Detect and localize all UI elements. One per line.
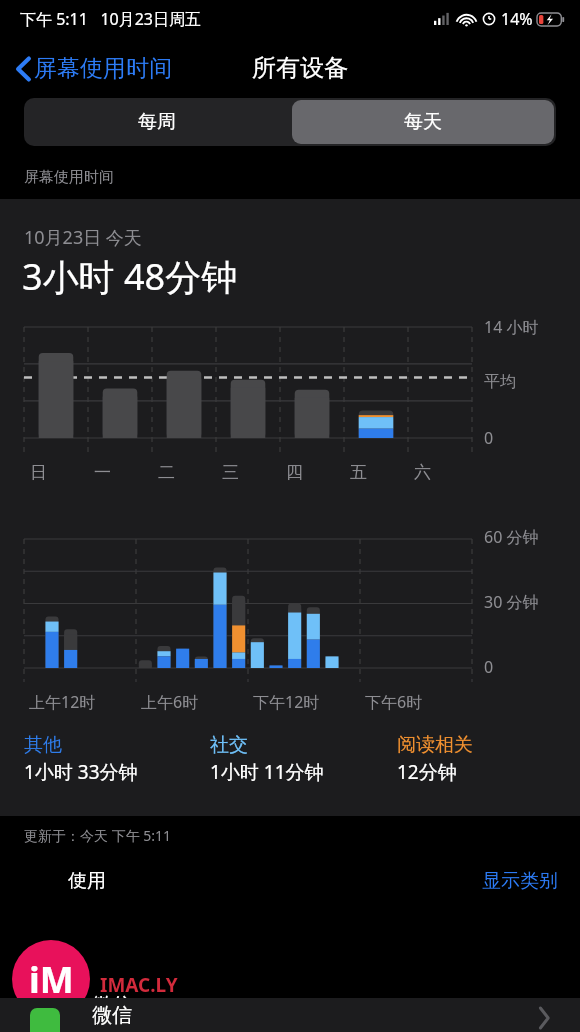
staticText: 1小时 11分钟 (210, 759, 324, 785)
staticText: iM (29, 955, 74, 1004)
staticText: 三 (222, 462, 239, 483)
staticText: 显示类别 (482, 869, 558, 893)
button[interactable]: 显示类别 (482, 869, 580, 893)
staticText: 60 分钟 (484, 526, 539, 548)
staticText: 所有设备 (252, 53, 348, 83)
staticText: 0 (484, 656, 494, 678)
staticText: 二 (158, 462, 175, 483)
button[interactable]: 每天 (292, 100, 554, 144)
staticText: 使用 (68, 869, 106, 893)
staticText: 其他 (24, 733, 62, 757)
staticText: 每周 (138, 110, 176, 134)
button[interactable]: 社交 (210, 733, 397, 785)
staticText: 一 (94, 462, 111, 483)
staticText: 下午 5:11 10月23日周五 (20, 8, 201, 30)
staticText: 1小时 33分钟 (24, 759, 138, 785)
staticText: 每天 (404, 110, 442, 134)
button[interactable]: 阅读相关 (397, 733, 556, 785)
staticText: 14 小时 (484, 316, 539, 338)
staticText: 屏幕使用时间 (24, 168, 114, 187)
other: 返回 (16, 56, 31, 82)
staticText: GENIUS (140, 996, 178, 1010)
staticText: 下午12时 (253, 691, 320, 713)
staticText: 上午12时 (29, 691, 96, 713)
button[interactable]: 10月23日 今天 (0, 199, 580, 816)
staticText: 0 (484, 427, 494, 449)
staticText: 社交 (210, 733, 248, 757)
staticText: 3小时 48分钟 (22, 252, 238, 301)
staticText: 日 (30, 462, 47, 483)
button[interactable]: 每周 (24, 98, 290, 146)
staticText: 上午6时 (141, 691, 199, 713)
staticText: 六 (414, 462, 431, 483)
staticText: 12分钟 (397, 759, 457, 785)
staticText: 30 分钟 (484, 591, 539, 613)
staticText: 微信 (92, 993, 132, 1018)
button[interactable]: 其他 (24, 733, 210, 785)
staticText: 屏幕使用时间 (34, 54, 172, 83)
staticText: 更新于：今天 下午 5:11 (24, 826, 172, 845)
staticText: 阅读相关 (397, 733, 473, 757)
staticText: 五 (350, 462, 367, 483)
staticText: 下午6时 (365, 691, 423, 713)
staticText: 10月23日 今天 (24, 225, 142, 250)
staticText: 微信 (92, 1003, 132, 1028)
staticText: 平均 (484, 372, 516, 392)
staticText: 四 (286, 462, 303, 483)
staticText: IMAC.LY (100, 972, 178, 998)
staticText: 14% (501, 8, 533, 30)
button[interactable]: 返回 (12, 48, 176, 89)
